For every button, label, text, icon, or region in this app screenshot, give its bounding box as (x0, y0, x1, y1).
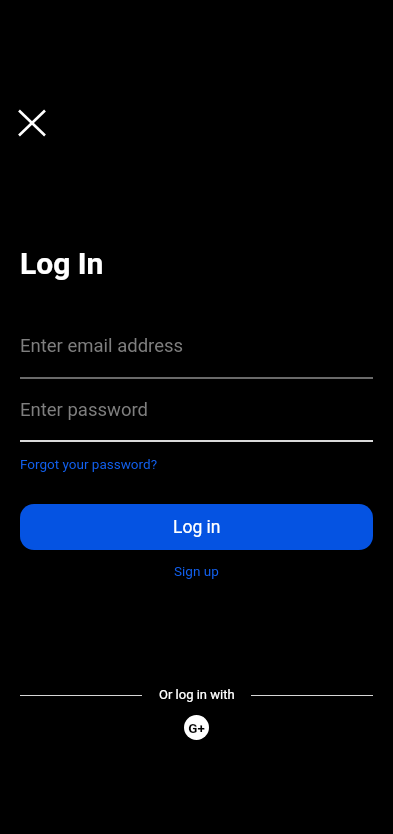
button[interactable]: G+ (184, 715, 209, 740)
staticText: G+ (188, 720, 205, 736)
staticText: Enter password (20, 399, 148, 421)
staticText: Or log in with (159, 687, 235, 702)
staticText: Enter email address (20, 335, 184, 357)
button[interactable]: Forgot your password? (20, 456, 158, 472)
button[interactable]: Log in (20, 504, 373, 550)
button[interactable]: Enter password (20, 395, 373, 442)
staticText: Sign up (174, 563, 219, 579)
staticText: Forgot your password? (20, 456, 158, 472)
button[interactable]: Enter email address (20, 330, 373, 379)
staticText: Log in (173, 517, 221, 538)
button[interactable] (11, 102, 53, 144)
button[interactable]: Sign up (174, 563, 219, 579)
staticText: Log In (20, 246, 104, 281)
